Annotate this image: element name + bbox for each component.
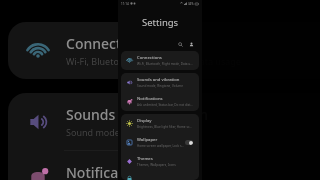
staticText: Wi-Fi, Bluetooth, Flight mode, Data usag… xyxy=(66,55,241,67)
staticText: Sounds and vibration xyxy=(66,105,209,124)
button[interactable]: Connections xyxy=(121,51,199,70)
staticText: Connections xyxy=(66,34,150,53)
staticText: Home screen wallpaper, Lock screen wallp… xyxy=(137,144,185,148)
staticText: Themes xyxy=(137,156,153,162)
staticText: 11:14 xyxy=(121,2,129,6)
staticText: Ask unlimited, Status bar, Do not distur… xyxy=(137,103,193,107)
staticText: Sound mode, Ringtone, Volume xyxy=(137,84,183,88)
staticText: Themes, Wallpapers, Icons xyxy=(137,163,176,167)
button[interactable]: Profile xyxy=(187,40,195,48)
button[interactable]: Wallpaper xyxy=(121,133,199,152)
button[interactable]: Lock screen xyxy=(121,171,199,180)
staticText: Wallpaper xyxy=(137,137,158,143)
button[interactable]: Search xyxy=(176,40,184,48)
staticText: Wi-Fi, Bluetooth, Flight mode, Data usag… xyxy=(137,62,193,66)
staticText: Sounds and vibration xyxy=(137,77,180,83)
staticText: Settings xyxy=(142,16,179,29)
button[interactable]: Sounds and vibration xyxy=(121,73,199,92)
staticText: Notifications xyxy=(137,96,163,102)
staticText: Brightness, Blue light filter, Home scre… xyxy=(137,125,193,129)
staticText: Connections xyxy=(137,55,162,61)
staticText: Sound mode, Ringtone, Volume xyxy=(66,126,200,138)
staticText: Display xyxy=(137,118,152,124)
staticText: Notifications xyxy=(66,163,152,180)
button[interactable]: Notifications xyxy=(121,92,199,111)
button[interactable] xyxy=(185,140,193,145)
button[interactable]: Themes xyxy=(121,152,199,171)
staticText: 34% xyxy=(188,2,194,6)
button[interactable]: Display xyxy=(121,114,199,133)
